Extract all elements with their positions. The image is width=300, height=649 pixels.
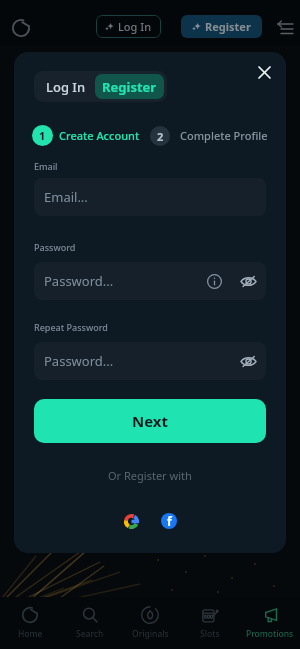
button[interactable]: Originals [120,597,180,649]
staticText: 2 [157,129,164,144]
staticText: Next [132,411,169,431]
staticText: Originals [132,628,169,640]
staticText: 1 [39,128,46,143]
staticText: Password... [44,272,114,290]
staticText: Password... [44,352,114,370]
staticText: Home [18,628,43,640]
button[interactable]: Reload [11,18,31,38]
staticText: Search [76,628,104,640]
button[interactable]: Password requirements [204,271,224,291]
button[interactable]: Register with Facebook [158,510,180,532]
staticText: Password [34,241,76,253]
staticText: Create Account [59,128,140,143]
staticText: Slots [200,628,220,640]
button[interactable]: Email... [34,178,266,216]
staticText: Log In [118,19,152,34]
button[interactable]: Password... [34,342,266,380]
button[interactable]: Home [0,597,60,649]
button[interactable]: 1 [32,125,53,146]
button[interactable]: Show password [238,271,258,291]
button[interactable]: Register [95,74,164,99]
staticText: Repeat Password [34,321,108,333]
staticText: Log In [46,78,86,96]
button[interactable]: Promotions [240,597,300,649]
button[interactable]: Next [34,399,266,443]
button[interactable]: Password... [34,262,266,300]
button[interactable]: 2 [150,126,170,146]
button[interactable]: Log In [96,15,161,38]
staticText: Complete Profile [180,128,268,143]
button[interactable]: Show repeated password [238,351,258,371]
staticText: Or Register with [108,468,192,483]
staticText: Register [205,19,251,34]
staticText: Email [34,160,58,172]
button[interactable]: Slots [180,597,240,649]
button[interactable]: Register [181,15,262,38]
button[interactable]: Close [252,60,276,84]
button[interactable]: Log In [37,74,95,99]
staticText: Email... [44,188,88,206]
staticText: Register [102,78,157,96]
staticText: f [167,513,172,529]
staticText: Promotions [246,628,294,640]
button[interactable]: Register with Google [120,510,142,532]
button[interactable]: Menu [276,20,293,37]
button[interactable]: Search [60,597,120,649]
